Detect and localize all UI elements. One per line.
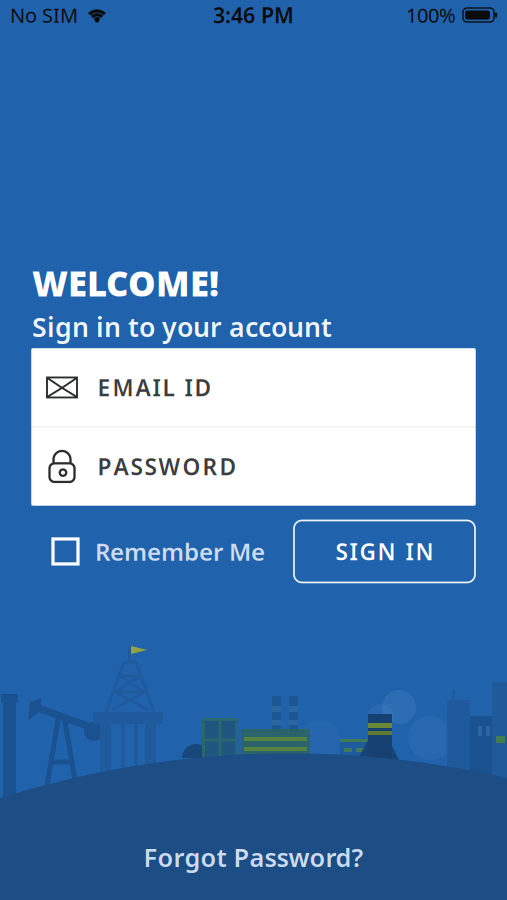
staticText: Forgot Password? — [143, 840, 363, 874]
button[interactable]: E M A I L I D — [31, 348, 475, 426]
staticText: S I G N I N — [335, 536, 433, 566]
staticText: WELCOME! — [32, 260, 219, 306]
button[interactable]: Forgot Password? — [143, 840, 363, 874]
staticText: 100% — [406, 2, 456, 28]
staticText: E M A I L I D — [97, 372, 211, 402]
staticText: No SIM — [10, 2, 78, 28]
staticText: Sign in to your account — [32, 309, 332, 344]
staticText: Remember Me — [95, 535, 265, 567]
staticText: 3:46 PM — [213, 1, 294, 29]
staticText: P A S S W O R D — [97, 451, 236, 481]
button[interactable]: Remember Me — [53, 535, 265, 567]
button[interactable]: P A S S W O R D — [31, 427, 475, 505]
button[interactable]: S I G N I N — [294, 520, 475, 582]
